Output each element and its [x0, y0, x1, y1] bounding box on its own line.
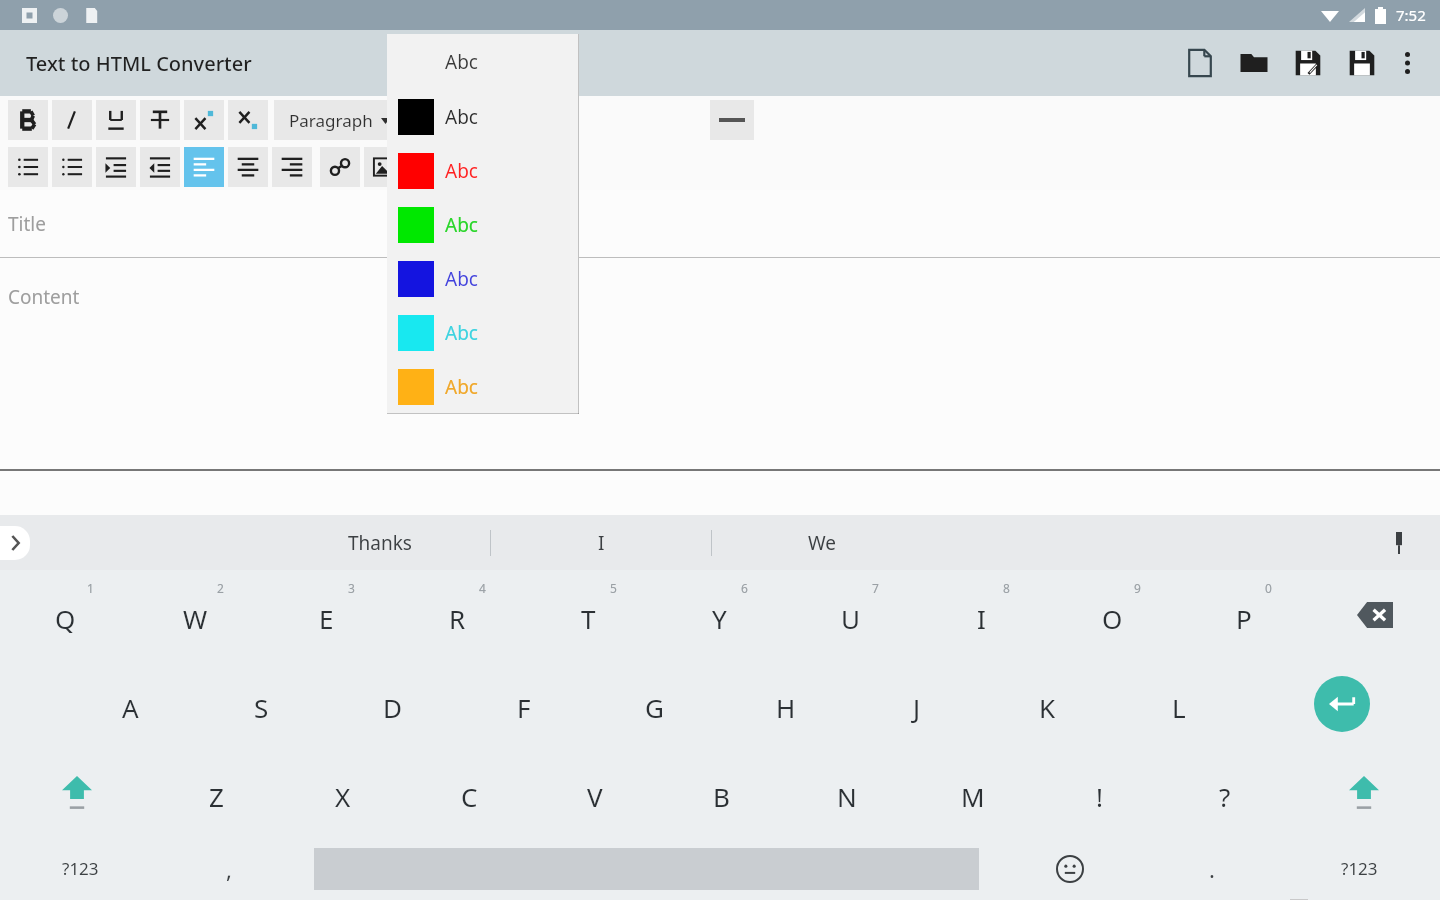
staticText: O: [1102, 601, 1123, 636]
button[interactable]: C: [406, 748, 532, 837]
button[interactable]: 3: [261, 570, 392, 659]
staticText: A: [122, 690, 139, 725]
button[interactable]: ,: [161, 837, 296, 900]
button[interactable]: Enter: [1244, 659, 1440, 748]
staticText: 4: [479, 580, 486, 596]
button[interactable]: Strikethrough: [140, 100, 180, 140]
button[interactable]: Save: [1342, 43, 1382, 83]
staticText: R: [449, 601, 466, 636]
button[interactable]: 4: [392, 570, 523, 659]
button[interactable]: Abc: [387, 360, 579, 414]
staticText: 3: [348, 580, 355, 596]
button[interactable]: Underline: [96, 100, 136, 140]
button[interactable]: Open folder: [1234, 43, 1274, 83]
staticText: 1: [87, 580, 94, 596]
button[interactable]: Text color: [710, 100, 754, 140]
button[interactable]: Abc: [387, 198, 579, 252]
button[interactable]: Increase indent: [96, 147, 136, 187]
button[interactable]: ?: [1162, 748, 1288, 837]
staticText: Y: [712, 601, 727, 636]
button[interactable]: 1: [0, 570, 130, 659]
button[interactable]: Abc: [387, 34, 579, 90]
button[interactable]: G: [589, 659, 720, 748]
staticText: ?123: [1341, 857, 1378, 880]
button[interactable]: 2: [130, 570, 261, 659]
button[interactable]: .: [1144, 837, 1279, 900]
button[interactable]: V: [532, 748, 658, 837]
button[interactable]: Content: [0, 258, 1440, 469]
button[interactable]: B: [658, 748, 784, 837]
staticText: G: [645, 690, 664, 725]
button[interactable]: ?123: [1279, 837, 1440, 900]
button[interactable]: Thanks: [270, 515, 490, 570]
button[interactable]: Shift: [0, 748, 153, 837]
button[interactable]: Italic: [52, 100, 92, 140]
staticText: Abc: [445, 104, 478, 130]
staticText: Text to HTML Converter: [26, 50, 252, 77]
button[interactable]: Abc: [387, 144, 579, 198]
button[interactable]: 0: [1178, 570, 1309, 659]
button[interactable]: Text to HTML Converter: [26, 50, 252, 77]
staticText: B: [713, 779, 730, 814]
button[interactable]: 5: [523, 570, 654, 659]
button[interactable]: D: [327, 659, 458, 748]
button[interactable]: H: [720, 659, 851, 748]
button[interactable]: 6: [654, 570, 785, 659]
button[interactable]: Align center: [228, 147, 268, 187]
button[interactable]: Paragraph: [274, 100, 404, 140]
button[interactable]: Shift: [1288, 748, 1440, 837]
staticText: Title: [8, 211, 46, 237]
button[interactable]: J: [851, 659, 982, 748]
staticText: Abc: [445, 49, 478, 75]
button[interactable]: Emoji: [996, 837, 1144, 900]
button[interactable]: Voice input: [1382, 526, 1416, 560]
button[interactable]: K: [982, 659, 1113, 748]
button[interactable]: Abc: [387, 90, 579, 144]
button[interactable]: More options: [1390, 46, 1424, 80]
button[interactable]: Space: [296, 837, 996, 900]
staticText: E: [319, 601, 334, 636]
button[interactable]: New document: [1180, 43, 1220, 83]
button[interactable]: 8: [916, 570, 1047, 659]
button[interactable]: S: [196, 659, 327, 748]
button[interactable]: Insert link: [320, 147, 360, 187]
button[interactable]: A: [65, 659, 196, 748]
button[interactable]: X: [280, 748, 406, 837]
staticText: ?123: [62, 857, 99, 880]
button[interactable]: M: [910, 748, 1036, 837]
staticText: N: [837, 779, 857, 814]
staticText: 7: [872, 580, 879, 596]
button[interactable]: N: [784, 748, 910, 837]
staticText: 6: [741, 580, 748, 596]
button[interactable]: Numbered list: [52, 147, 92, 187]
button[interactable]: Bulleted list: [8, 147, 48, 187]
button[interactable]: Insert image: [364, 147, 404, 187]
button[interactable]: !: [1036, 748, 1162, 837]
button[interactable]: 9: [1047, 570, 1178, 659]
button[interactable]: 7: [785, 570, 916, 659]
button[interactable]: Save as: [1288, 43, 1328, 83]
button[interactable]: Backspace: [1309, 570, 1440, 659]
staticText: Abc: [445, 374, 478, 400]
button[interactable]: Abc: [387, 252, 579, 306]
button[interactable]: Align right: [272, 147, 312, 187]
button[interactable]: Z: [153, 748, 280, 837]
button[interactable]: Expand toolbar: [0, 526, 30, 560]
button[interactable]: Bold: [8, 100, 48, 140]
button[interactable]: Subscript: [228, 100, 268, 140]
staticText: W: [183, 601, 208, 636]
button[interactable]: ?123: [0, 837, 161, 900]
button[interactable]: I: [491, 515, 711, 570]
button[interactable]: Abc: [387, 306, 579, 360]
button[interactable]: L: [1113, 659, 1244, 748]
button[interactable]: Decrease indent: [140, 147, 180, 187]
staticText: K: [1039, 690, 1056, 725]
button[interactable]: F: [458, 659, 589, 748]
staticText: Abc: [445, 266, 478, 292]
button[interactable]: We: [712, 515, 932, 570]
button[interactable]: Superscript: [184, 100, 224, 140]
button[interactable]: Align left: [184, 147, 224, 187]
staticText: L: [1172, 690, 1186, 725]
staticText: I: [977, 601, 986, 636]
button[interactable]: Title: [0, 190, 1440, 257]
